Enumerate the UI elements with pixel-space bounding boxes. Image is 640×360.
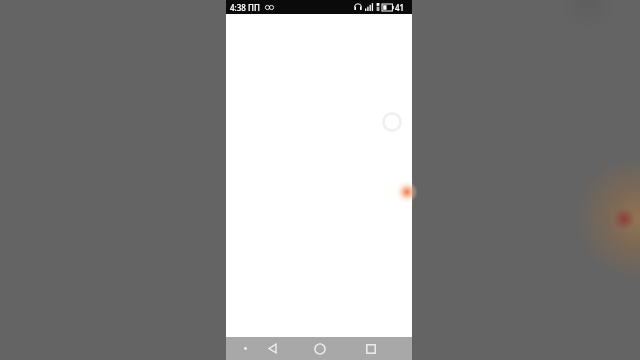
button[interactable]: Back — [264, 340, 281, 357]
button[interactable]: Home — [311, 340, 328, 357]
staticText: 4:38 ΠΠ — [230, 2, 260, 13]
staticText: 41 — [395, 2, 405, 13]
button[interactable]: Menu — [238, 341, 253, 356]
button[interactable]: Recent apps — [362, 340, 379, 357]
